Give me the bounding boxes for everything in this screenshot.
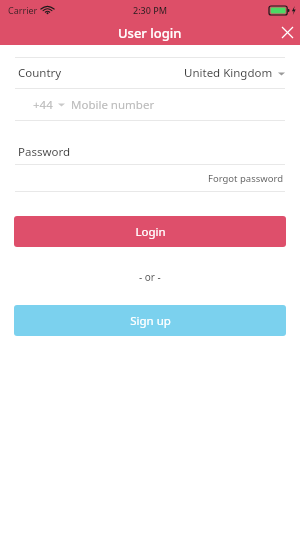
staticText: United Kingdom xyxy=(184,65,273,81)
staticText: Password xyxy=(18,144,71,160)
button[interactable]: +44 xyxy=(0,89,300,120)
staticText: Login xyxy=(135,224,166,240)
staticText: Carrier xyxy=(8,4,38,16)
staticText: - or - xyxy=(139,270,161,284)
button[interactable]: Password xyxy=(0,140,300,164)
staticText: Mobile number xyxy=(71,97,155,113)
button[interactable]: Forgot password xyxy=(0,165,300,191)
staticText: 2:30 PM xyxy=(133,4,167,16)
button[interactable]: Sign up xyxy=(14,305,286,336)
button[interactable]: Login xyxy=(14,216,286,247)
button[interactable]: Country xyxy=(0,58,300,88)
staticText: User login xyxy=(118,24,182,42)
staticText: Country xyxy=(18,65,62,81)
staticText: Forgot password xyxy=(208,172,284,185)
staticText: Sign up xyxy=(130,313,171,329)
staticText: +44 xyxy=(33,97,53,113)
button[interactable]: Close xyxy=(275,20,300,45)
